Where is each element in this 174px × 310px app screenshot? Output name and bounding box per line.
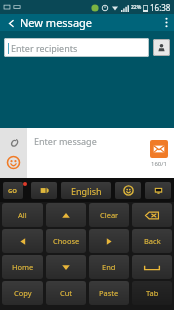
staticText: Home [12, 262, 34, 272]
button[interactable]: Tab [132, 281, 172, 305]
button[interactable]: Keyboard settings [145, 182, 171, 199]
button[interactable]: Clear [89, 203, 129, 227]
button[interactable]: End [89, 255, 129, 279]
button[interactable]: DOWN [46, 255, 86, 279]
button[interactable]: RIGHT [89, 229, 129, 253]
staticText: 16:38 [150, 2, 171, 13]
button[interactable]: Emoticons [115, 182, 141, 199]
button[interactable]: Home [2, 255, 43, 279]
button[interactable]: Enter message [27, 128, 144, 178]
staticText: Copy [14, 288, 32, 298]
staticText: Choose [53, 236, 80, 246]
button[interactable]: Back [4, 16, 18, 30]
staticText: New message [20, 15, 93, 30]
button[interactable]: Cut [46, 281, 86, 305]
staticText: Back [144, 236, 161, 246]
button[interactable]: Attach [5, 134, 22, 151]
staticText: Paste [99, 288, 119, 298]
staticText: All [18, 210, 27, 220]
staticText: Tab [146, 288, 159, 298]
button[interactable]: Add contact [153, 39, 170, 56]
button[interactable]: BACKSPACE [132, 203, 172, 227]
button[interactable]: All [2, 203, 43, 227]
button[interactable]: LEFT [2, 229, 43, 253]
button[interactable]: Back [132, 229, 172, 253]
staticText: Clear [100, 210, 119, 220]
button[interactable]: Paste [89, 281, 129, 305]
button[interactable]: GO [3, 182, 23, 199]
button[interactable]: Choose [46, 229, 86, 253]
button[interactable]: Voice input [31, 182, 57, 199]
button[interactable]: Send [150, 140, 168, 158]
button[interactable]: More options [158, 14, 174, 31]
staticText: 160/1 [151, 160, 167, 168]
staticText: End [102, 262, 116, 272]
button[interactable]: English [61, 182, 111, 199]
staticText: 22% [131, 4, 142, 11]
staticText: Cut [60, 288, 73, 298]
button[interactable]: Emoji [5, 154, 22, 171]
button[interactable]: Enter recipients [4, 38, 149, 57]
staticText: Enter message [34, 135, 97, 147]
button[interactable]: SPACE [132, 255, 172, 279]
staticText: GO [8, 187, 18, 195]
button[interactable]: Copy [2, 281, 43, 305]
button[interactable]: UP [46, 203, 86, 227]
staticText: Enter recipients [11, 42, 78, 54]
staticText: English [71, 185, 102, 197]
